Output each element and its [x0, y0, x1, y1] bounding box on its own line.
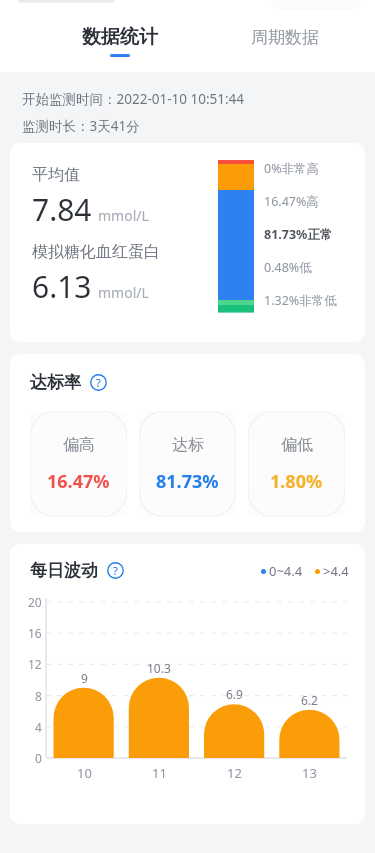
staticText: 达标: [172, 435, 204, 455]
staticText: 开始监测时间：2022-01-10 10:51:44: [22, 90, 245, 108]
button[interactable]: 平均值: [10, 143, 365, 342]
staticText: 监测时长：3天41分: [22, 117, 140, 135]
staticText: 偏低: [281, 435, 313, 455]
staticText: 10.3: [147, 660, 171, 676]
staticText: mmol/L: [98, 283, 149, 302]
staticText: 11: [152, 764, 167, 782]
button[interactable]: 周期数据: [225, 10, 345, 72]
staticText: 16.47%: [47, 469, 110, 494]
staticText: 12: [28, 656, 42, 672]
staticText: 6.2: [301, 692, 318, 708]
staticText: 0%非常高: [264, 160, 320, 177]
staticText: 周期数据: [251, 27, 319, 48]
staticText: 偏高: [63, 435, 95, 455]
staticText: 0.48%低: [264, 259, 312, 276]
staticText: 每日波动: [30, 560, 98, 581]
staticText: 16: [28, 625, 42, 641]
staticText: 8: [35, 688, 42, 704]
staticText: 模拟糖化血红蛋白: [32, 242, 160, 262]
staticText: 数据统计: [82, 25, 158, 49]
button[interactable]: 偏低: [248, 411, 345, 517]
staticText: 1.32%非常低: [264, 292, 337, 309]
staticText: 1.80%: [270, 469, 323, 494]
staticText: 12: [227, 764, 242, 782]
staticText: ?: [113, 563, 118, 578]
staticText: 20: [28, 594, 42, 610]
staticText: 81.73%正常: [264, 226, 333, 243]
staticText: 6.9: [226, 686, 243, 702]
staticText: >4.4: [323, 562, 349, 580]
staticText: 16.47%高: [264, 193, 319, 210]
button[interactable]: 达标: [139, 411, 236, 517]
button[interactable]: 偏高: [30, 411, 127, 517]
button[interactable]: Help: [90, 374, 107, 391]
staticText: mmol/L: [98, 206, 149, 225]
button[interactable]: 数据统计: [60, 10, 180, 72]
staticText: 达标率: [30, 372, 81, 393]
button[interactable]: Help: [107, 562, 124, 579]
staticText: 81.73%: [156, 469, 219, 494]
staticText: 13: [302, 764, 317, 782]
staticText: 6.13: [32, 266, 92, 307]
staticText: 7.84: [32, 189, 92, 230]
staticText: ?: [96, 375, 101, 390]
staticText: 平均值: [32, 165, 80, 185]
staticText: 9: [81, 670, 88, 686]
staticText: 0: [35, 750, 42, 766]
staticText: 10: [77, 764, 92, 782]
staticText: 0~4.4: [269, 562, 303, 580]
staticText: 4: [35, 719, 42, 735]
